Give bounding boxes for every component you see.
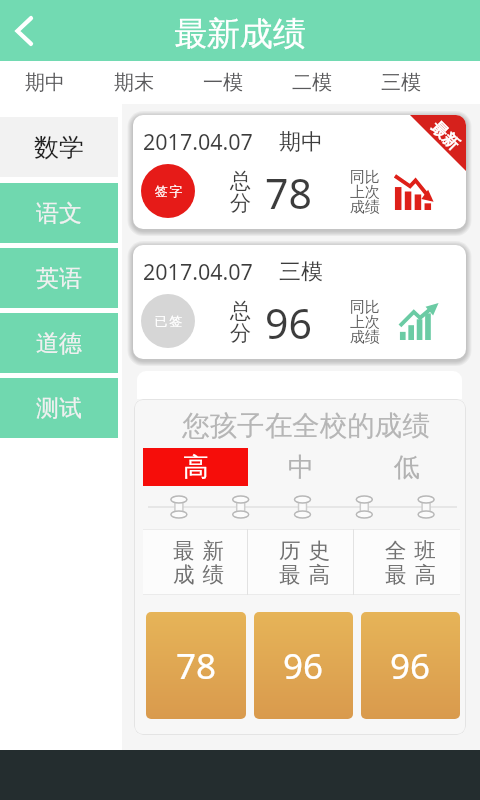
staticText: 期中	[25, 70, 65, 95]
staticText: 低	[394, 451, 420, 484]
button[interactable]: 数学	[0, 117, 118, 177]
staticText: 三模	[381, 70, 421, 95]
button[interactable]: 三模	[356, 61, 445, 104]
staticText: 数学	[34, 132, 84, 163]
staticText: 历史 最高	[275, 537, 334, 588]
staticText: 2017.04.07	[143, 127, 253, 156]
button[interactable]: 全班 最高	[354, 529, 460, 595]
staticText: 您孩子在全校的成绩	[140, 409, 466, 444]
button[interactable]: 低	[354, 448, 460, 486]
button[interactable]: Back	[2, 9, 46, 53]
staticText: 一模	[203, 70, 243, 95]
button[interactable]: 历史 最高	[248, 529, 354, 595]
staticText: 总 分	[230, 168, 251, 217]
button[interactable]: 最新 成绩	[143, 529, 248, 595]
staticText: 最新 成绩	[169, 537, 228, 588]
staticText: 高	[183, 451, 209, 484]
staticText: 语文	[36, 199, 82, 228]
button[interactable]: 测试	[0, 378, 118, 438]
button[interactable]: 语文	[0, 183, 118, 243]
staticText: 全班 最高	[381, 537, 440, 588]
staticText: 英语	[36, 264, 82, 293]
staticText: 最新	[427, 118, 463, 154]
staticText: 78	[265, 165, 312, 219]
staticText: 78	[176, 642, 217, 690]
staticText: 同比 上次 成绩	[350, 168, 380, 217]
staticText: 96	[390, 642, 431, 690]
staticText: 签字	[154, 183, 183, 199]
button[interactable]: 96	[254, 612, 353, 719]
staticText: 道德	[36, 329, 82, 358]
staticText: 测试	[36, 394, 82, 423]
button[interactable]: 高	[143, 448, 248, 486]
staticText: 二模	[292, 70, 332, 95]
button[interactable]: 二模	[267, 61, 356, 104]
button[interactable]: 期末	[89, 61, 178, 104]
staticText: 2017.04.07	[143, 257, 253, 286]
button[interactable]: 道德	[0, 313, 118, 373]
button[interactable]: 一模	[178, 61, 267, 104]
staticText: 最新成绩	[174, 13, 306, 55]
button[interactable]: 2017.04.07	[133, 245, 466, 359]
staticText: 三模	[279, 258, 323, 286]
staticText: 期末	[114, 70, 154, 95]
staticText: 同比 上次 成绩	[350, 298, 380, 347]
staticText: 中	[288, 451, 314, 484]
staticText: 总 分	[230, 298, 251, 347]
button[interactable]: 96	[361, 612, 460, 719]
button[interactable]: 英语	[0, 248, 118, 308]
staticText: 96	[265, 295, 312, 349]
button[interactable]: 期中	[0, 61, 89, 104]
button[interactable]: 中	[248, 448, 354, 486]
staticText: 期中	[279, 128, 323, 156]
staticText: 已签	[154, 313, 183, 329]
button[interactable]: 2017.04.07	[133, 115, 466, 229]
staticText: 96	[283, 642, 324, 690]
button[interactable]: 78	[146, 612, 246, 719]
